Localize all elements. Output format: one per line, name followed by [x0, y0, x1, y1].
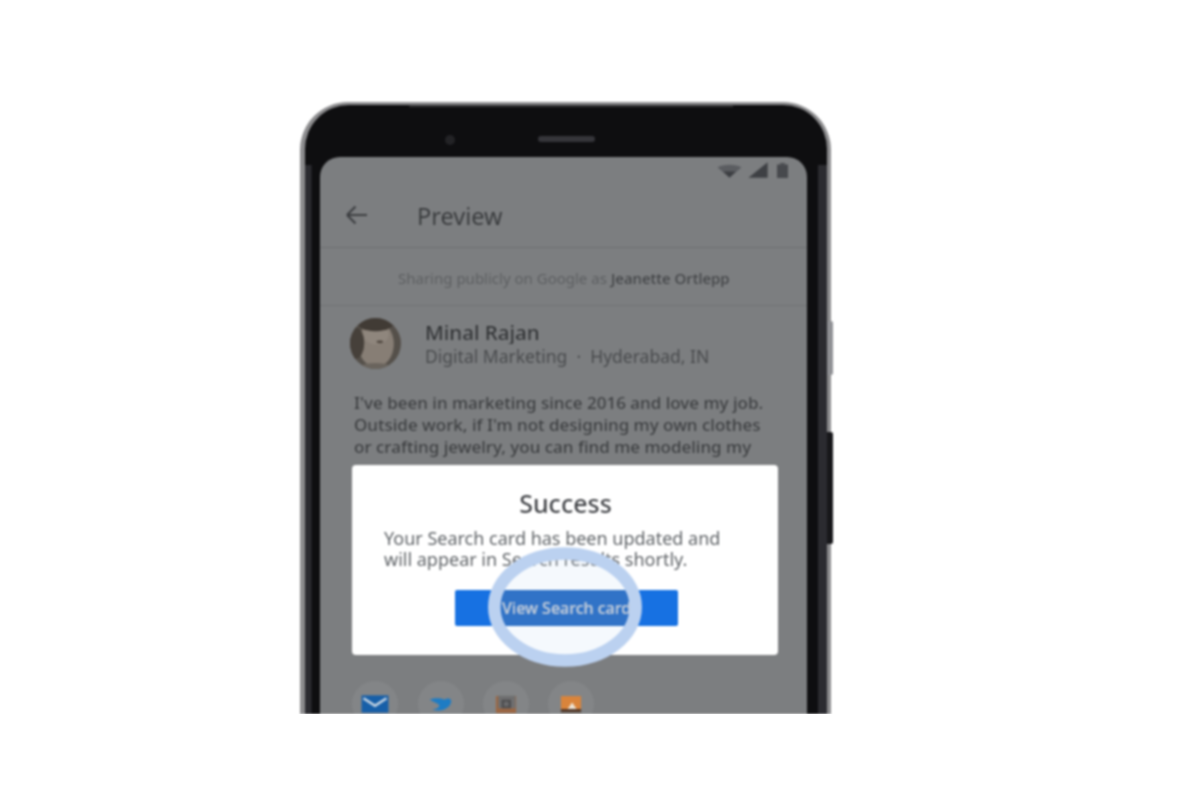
staticText: View Search card	[502, 597, 632, 619]
staticText: Preview	[417, 200, 503, 230]
staticText: Sharing publicly on Google as	[398, 268, 611, 288]
button[interactable]: Email	[352, 681, 398, 714]
staticText: Outside work, if I'm not designing my ow…	[354, 413, 761, 436]
button[interactable]: Photos	[548, 681, 594, 714]
staticText: Digital Marketing · Hyderabad, IN	[425, 344, 710, 368]
staticText: will appear in Search results shortly.	[384, 547, 688, 572]
staticText: Success	[519, 486, 612, 514]
staticText: I've been in marketing since 2016 and lo…	[354, 391, 764, 414]
staticText: Your Search card has been updated and	[384, 526, 721, 551]
button[interactable]: Instagram	[483, 681, 529, 714]
button[interactable]: Twitter	[418, 681, 464, 714]
staticText: or crafting jewelry, you can find me mod…	[354, 435, 752, 458]
staticText: Jeanette Ortlepp	[611, 268, 730, 288]
staticText: Minal Rajan	[425, 318, 540, 344]
button[interactable]: Back	[345, 203, 369, 227]
button[interactable]: View Search card	[455, 590, 678, 626]
